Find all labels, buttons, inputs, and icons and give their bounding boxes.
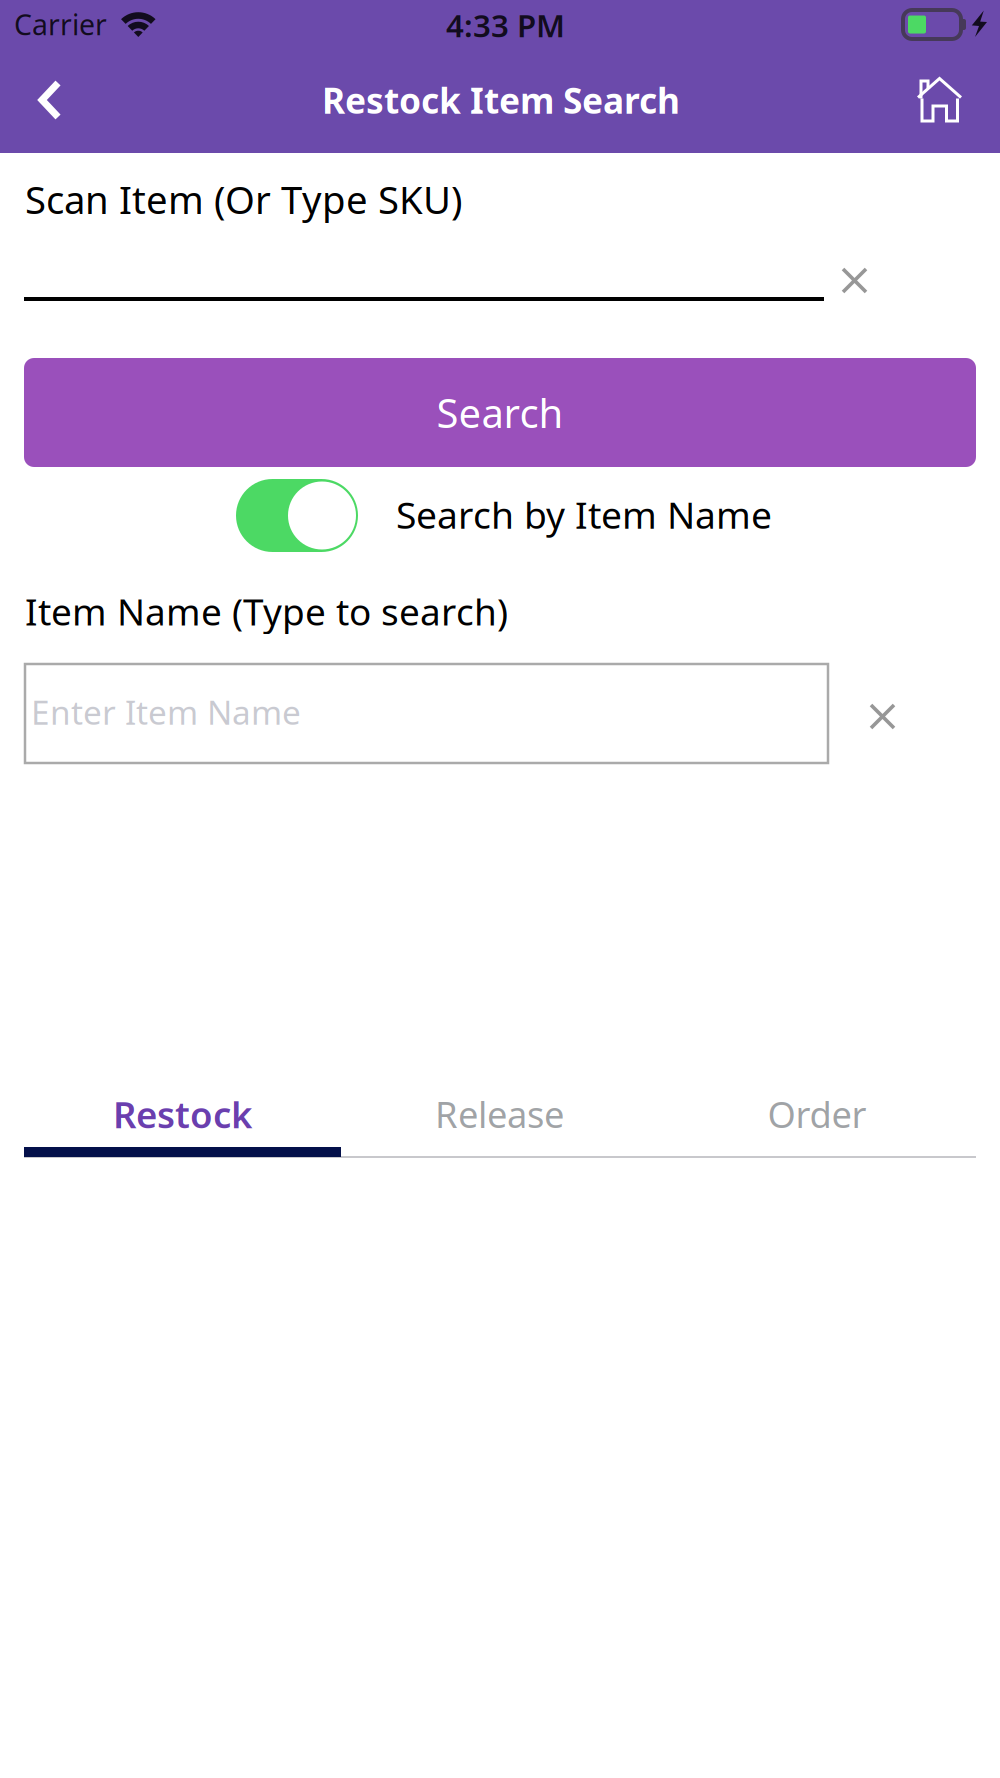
button[interactable]: Clear item name xyxy=(854,688,911,745)
staticText: Restock Item Search xyxy=(322,76,680,124)
staticText: Carrier xyxy=(14,5,107,44)
button[interactable]: Clear SKU xyxy=(826,252,883,309)
button[interactable]: Search by Item Name xyxy=(236,479,358,552)
staticText: Search by Item Name xyxy=(396,489,772,540)
button[interactable]: Order xyxy=(658,1081,976,1147)
button[interactable]: Search xyxy=(24,358,976,467)
staticText: Search xyxy=(436,385,563,440)
staticText: 4:33 PM xyxy=(446,4,565,46)
button[interactable]: Restock xyxy=(24,1081,341,1147)
button[interactable]: Home xyxy=(899,56,979,144)
button[interactable]: Release xyxy=(341,1081,658,1147)
staticText: Release xyxy=(435,1089,564,1139)
staticText: Item Name (Type to search) xyxy=(25,586,508,636)
staticText: Scan Item (Or Type SKU) xyxy=(25,173,462,225)
staticText: Enter Item Name xyxy=(31,689,301,734)
staticText: Order xyxy=(767,1089,866,1139)
staticText: Restock xyxy=(113,1089,252,1139)
button[interactable]: Back xyxy=(12,56,88,144)
